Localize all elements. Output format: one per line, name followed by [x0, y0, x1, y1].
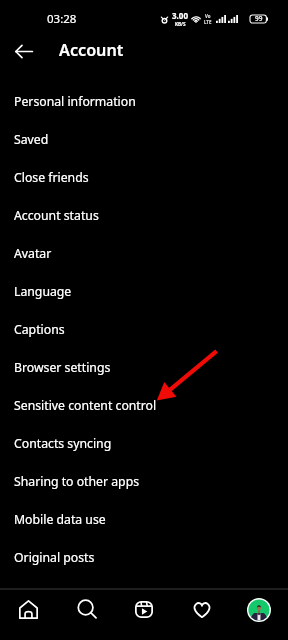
staticText: Personal information [14, 93, 136, 110]
staticText: Mobile data use [14, 511, 106, 528]
button[interactable]: Captions [0, 310, 288, 348]
staticText: Language [14, 283, 72, 300]
staticText: Close friends [14, 169, 89, 186]
staticText: Contacts syncing [14, 435, 112, 452]
button[interactable]: Back [11, 38, 37, 64]
staticText: Account [59, 39, 124, 61]
staticText: Captions [14, 321, 65, 338]
staticText: Browser settings [14, 359, 111, 376]
staticText: Original posts [14, 549, 95, 566]
button[interactable]: Reels [114, 590, 172, 629]
button[interactable]: Original posts [0, 538, 288, 576]
button[interactable]: Browser settings [0, 348, 288, 386]
button[interactable]: Search [57, 590, 114, 629]
button[interactable]: Sensitive content control [0, 386, 288, 424]
button[interactable]: Contacts syncing [0, 424, 288, 462]
button[interactable]: Home [0, 590, 57, 629]
staticText: Sensitive content control [14, 397, 157, 414]
staticText: Vo [205, 13, 211, 19]
button[interactable]: Mobile data use [0, 500, 288, 538]
button[interactable]: Sharing to other apps [0, 462, 288, 500]
button[interactable]: Avatar [0, 234, 288, 272]
staticText: Avatar [14, 245, 52, 262]
button[interactable]: Personal information [0, 82, 288, 120]
button[interactable]: Account status [0, 196, 288, 234]
button[interactable]: Saved [0, 120, 288, 158]
staticText: Account status [14, 207, 99, 224]
button[interactable]: Close friends [0, 158, 288, 196]
button[interactable]: Profile [230, 590, 288, 629]
staticText: LTE [204, 19, 212, 25]
staticText: 3.00 [172, 10, 188, 21]
staticText: Saved [14, 131, 49, 148]
button[interactable]: Language [0, 272, 288, 310]
button[interactable]: Activity [172, 590, 230, 629]
staticText: 99 [255, 14, 263, 23]
staticText: Sharing to other apps [14, 473, 140, 490]
staticText: KB/S [175, 21, 186, 27]
staticText: 03:28 [47, 11, 77, 27]
